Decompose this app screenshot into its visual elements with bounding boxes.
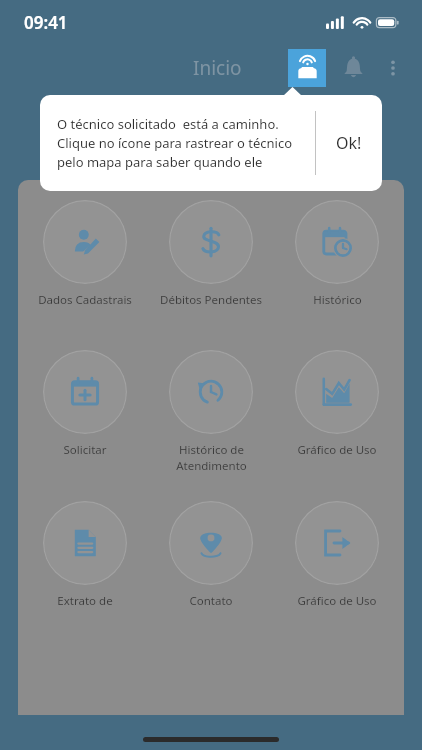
staticText: Dados Cadastrais xyxy=(38,292,132,308)
staticText: Débitos Pendentes xyxy=(160,292,262,308)
staticText: 09:41 xyxy=(24,11,68,34)
button[interactable]: Gráfico de Uso xyxy=(278,350,396,458)
button[interactable]: Dados Cadastrais xyxy=(26,200,144,308)
button[interactable]: Mais opcoes xyxy=(376,51,410,85)
button[interactable]: Extrato de xyxy=(26,501,144,609)
staticText: Contato xyxy=(189,593,233,609)
staticText: O técnico solicitado está a caminho. Cli… xyxy=(57,115,307,171)
staticText: Inicio xyxy=(193,55,242,81)
button[interactable]: Gráfico de Uso xyxy=(278,501,396,609)
staticText: Histórico de Atendimento xyxy=(176,442,247,473)
button[interactable]: Contato xyxy=(152,501,270,609)
staticText: Solicitar xyxy=(63,442,107,458)
button[interactable]: Solicitar xyxy=(26,350,144,458)
button[interactable]: Ok! xyxy=(316,95,382,191)
staticText: Extrato de xyxy=(57,593,113,609)
button[interactable]: Notificacoes xyxy=(334,49,372,87)
button[interactable]: Histórico xyxy=(278,200,396,308)
staticText: Ok! xyxy=(336,132,362,154)
staticText: Gráfico de Uso xyxy=(297,593,377,609)
button[interactable]: Histórico de Atendimento xyxy=(152,350,270,473)
staticText: Gráfico de Uso xyxy=(297,442,377,458)
button[interactable]: Débitos Pendentes xyxy=(152,200,270,308)
button[interactable]: Rastrear tecnico xyxy=(288,49,326,87)
staticText: Histórico xyxy=(313,292,362,308)
